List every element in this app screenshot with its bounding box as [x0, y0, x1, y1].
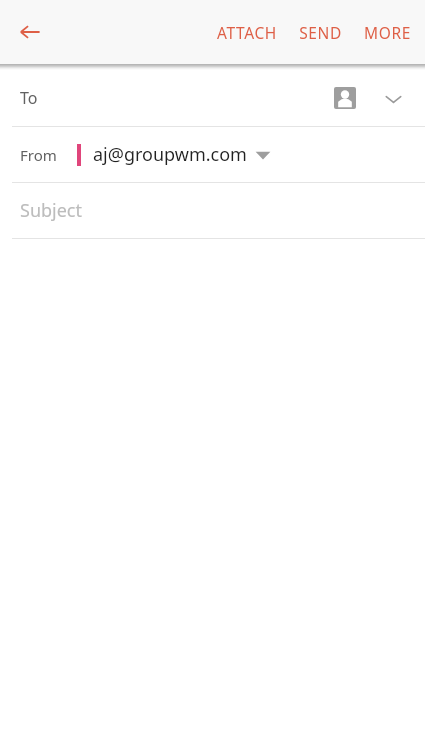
button[interactable]: Show Cc and Bcc — [375, 80, 411, 116]
button[interactable]: Subject — [0, 183, 425, 238]
button[interactable]: MORE — [356, 14, 419, 51]
button[interactable]: From — [0, 127, 425, 182]
button[interactable]: Choose contact — [327, 80, 363, 116]
button[interactable]: SEND — [291, 14, 350, 51]
staticText: To — [20, 87, 38, 109]
button[interactable]: ATTACH — [209, 14, 285, 51]
button[interactable]: Back — [8, 10, 52, 54]
staticText: SEND — [299, 22, 342, 43]
staticText: Subject — [20, 198, 83, 223]
staticText: From — [20, 145, 57, 165]
button[interactable]: To — [0, 70, 425, 126]
staticText: MORE — [364, 22, 411, 43]
staticText: ATTACH — [217, 22, 277, 43]
staticText: aj@groupwm.com — [93, 142, 247, 167]
